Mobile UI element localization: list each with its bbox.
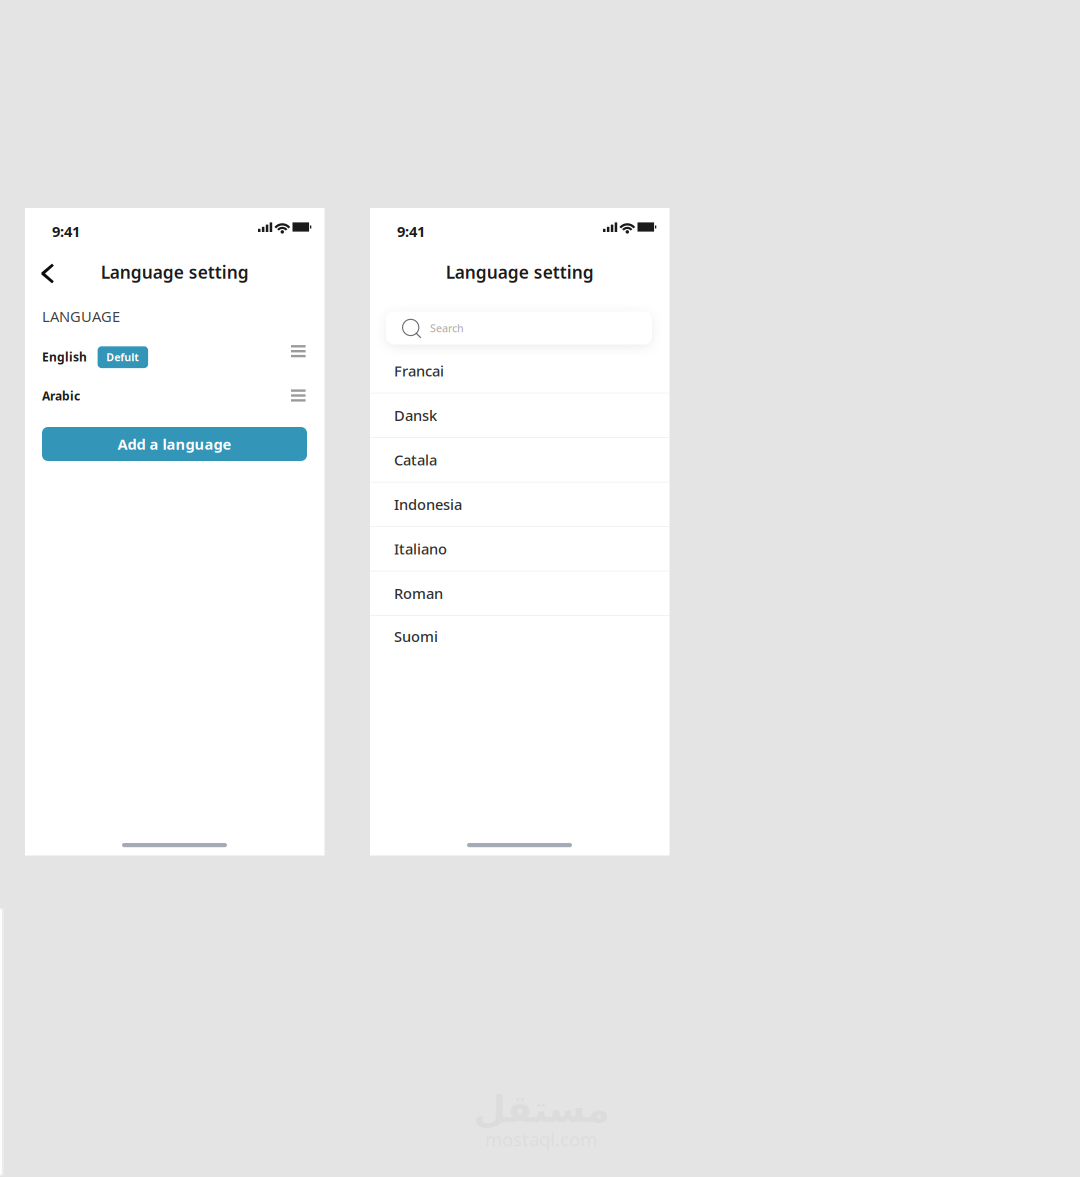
staticText: Language setting (446, 260, 594, 283)
button[interactable]: Search (386, 311, 652, 344)
button[interactable]: Suomi (370, 616, 669, 656)
staticText: 9:41 (52, 221, 80, 241)
staticText: Defult (106, 350, 139, 364)
staticText: Arabic (42, 388, 80, 404)
staticText: Add a language (117, 434, 231, 454)
button[interactable]: Francai (370, 349, 669, 393)
staticText: Roman (394, 584, 443, 603)
button[interactable]: Indonesia (370, 482, 669, 527)
staticText: LANGUAGE (42, 306, 120, 326)
staticText: مستقل (473, 1088, 609, 1130)
staticText: Catala (394, 450, 437, 470)
button[interactable]: Italiano (370, 527, 669, 571)
staticText: Dansk (394, 406, 437, 425)
staticText: Francai (394, 361, 444, 381)
button[interactable]: Arabic (25, 385, 324, 419)
button[interactable]: Dansk (370, 393, 669, 438)
button[interactable]: English (25, 346, 324, 380)
staticText: Language setting (101, 260, 249, 283)
button[interactable]: Add a language (42, 427, 307, 461)
button[interactable]: Roman (370, 571, 669, 616)
button[interactable]: Back (32, 257, 64, 289)
staticText: English (42, 349, 87, 365)
staticText: Search (430, 321, 464, 335)
staticText: Suomi (394, 626, 438, 646)
button[interactable]: Catala (370, 438, 669, 482)
staticText: Italiano (394, 539, 447, 559)
staticText: 9:41 (397, 221, 425, 241)
staticText: Indonesia (394, 495, 462, 514)
